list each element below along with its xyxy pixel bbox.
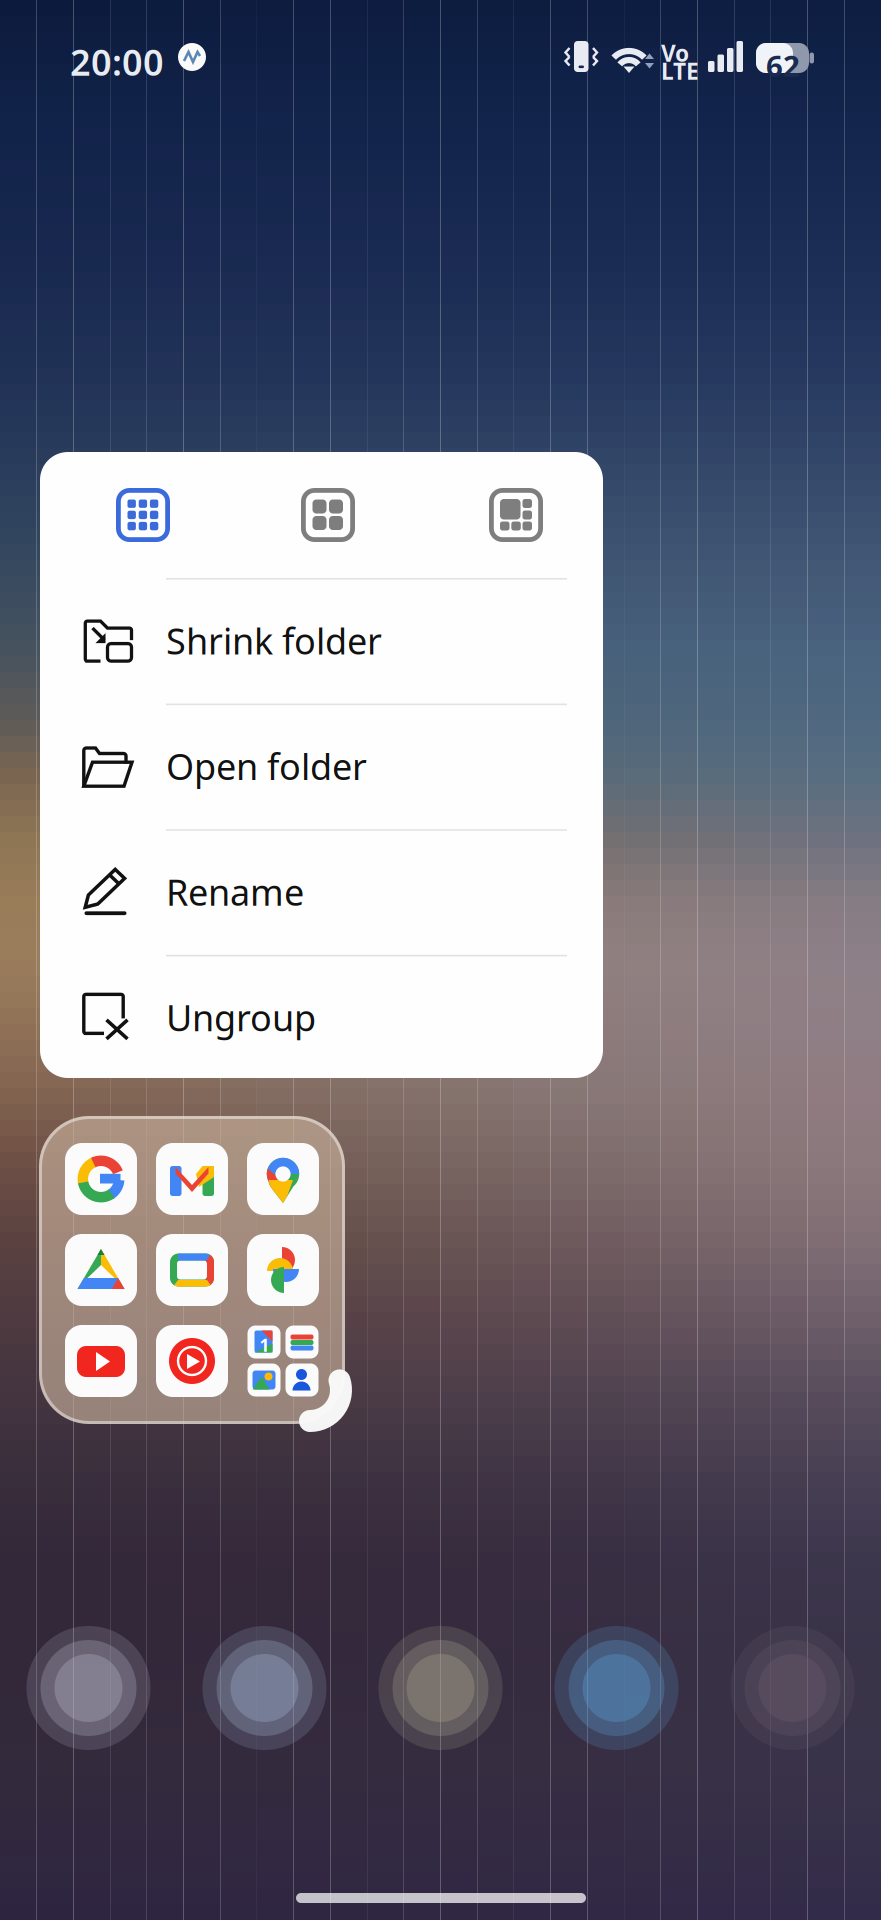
staticText: Rename bbox=[166, 868, 304, 916]
staticText: 20:00 bbox=[70, 38, 164, 86]
button[interactable]: Rename bbox=[40, 831, 603, 955]
staticText: LTE bbox=[661, 56, 699, 86]
button[interactable]: Small icons, 3 by 3 grid bbox=[83, 452, 203, 578]
staticText: Open folder bbox=[166, 742, 367, 790]
button[interactable]: Shrink folder bbox=[40, 580, 603, 704]
staticText: 1 bbox=[259, 1333, 269, 1356]
button[interactable]: Mixed icon layout bbox=[456, 452, 576, 578]
button[interactable]: Ungroup bbox=[40, 956, 603, 1080]
button[interactable]: Open folder bbox=[40, 705, 603, 829]
staticText: 62 bbox=[766, 46, 800, 85]
staticText: Shrink folder bbox=[166, 617, 382, 664]
button[interactable]: Large icons, 2 by 2 grid bbox=[268, 452, 388, 578]
staticText: Vo bbox=[661, 38, 689, 68]
staticText: Ungroup bbox=[166, 993, 316, 1041]
